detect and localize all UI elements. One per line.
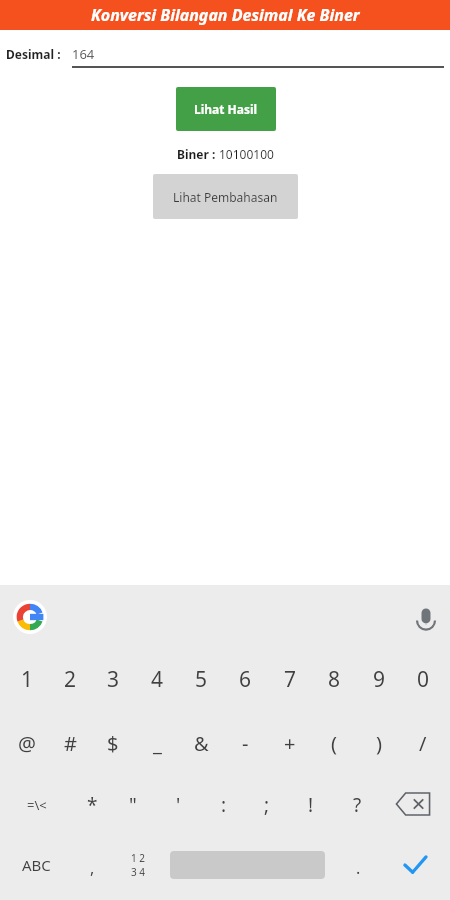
staticText: '	[176, 792, 181, 818]
button[interactable]: *	[70, 776, 114, 834]
button[interactable]: Lihat Hasil	[176, 87, 276, 131]
staticText: *	[87, 792, 98, 818]
button[interactable]: ?	[335, 776, 379, 834]
staticText: 4	[151, 665, 164, 694]
staticText: )	[376, 730, 382, 757]
staticText: Lihat Pembahasan	[173, 189, 278, 205]
staticText: .	[356, 857, 361, 879]
staticText: +	[284, 730, 296, 757]
button[interactable]: 1 2	[116, 841, 160, 889]
button[interactable]: /	[401, 714, 445, 772]
staticText: @	[18, 730, 36, 757]
button[interactable]: =\<	[15, 776, 59, 834]
button[interactable]: (	[312, 714, 356, 772]
staticText: 5	[195, 665, 208, 694]
button[interactable]: 1	[5, 650, 49, 708]
button[interactable]: 7	[268, 650, 312, 708]
button[interactable]: 6	[223, 650, 267, 708]
button[interactable]: ,	[70, 839, 114, 897]
button[interactable]: _	[135, 714, 179, 772]
button[interactable]: Backspace	[390, 778, 436, 830]
button[interactable]: 9	[357, 650, 401, 708]
staticText: 2	[64, 665, 77, 694]
staticText: 0	[417, 665, 430, 694]
staticText: :	[221, 792, 227, 818]
button[interactable]: !	[289, 776, 333, 834]
staticText: 164	[72, 45, 95, 63]
button[interactable]: ABC	[1, 836, 71, 894]
button[interactable]: &	[179, 714, 223, 772]
staticText: Konversi Bilangan Desimal Ke Biner	[91, 4, 360, 26]
button[interactable]: '	[156, 776, 200, 834]
staticText: ,	[90, 857, 95, 879]
button[interactable]: Lihat Pembahasan	[153, 174, 298, 219]
button[interactable]: Google	[13, 600, 47, 634]
button[interactable]: .	[336, 839, 380, 897]
staticText: ?	[353, 792, 362, 818]
staticText: 8	[328, 665, 341, 694]
staticText: ABC	[22, 855, 51, 875]
staticText: &	[194, 730, 209, 757]
staticText: Biner :	[177, 146, 219, 162]
staticText: 7	[284, 665, 297, 694]
staticText: /	[419, 730, 427, 757]
staticText: 1	[21, 665, 34, 694]
staticText: $	[107, 730, 119, 757]
staticText: =\<	[27, 796, 47, 814]
staticText: Desimal :	[6, 46, 61, 62]
button[interactable]: Enter	[392, 841, 438, 889]
button[interactable]: Voice input	[406, 598, 446, 638]
staticText: 10100100	[219, 146, 274, 162]
button[interactable]: -	[223, 714, 267, 772]
staticText: Lihat Hasil	[194, 101, 258, 117]
button[interactable]: 4	[135, 650, 179, 708]
button[interactable]: :	[202, 776, 246, 834]
staticText: 3	[107, 665, 120, 694]
staticText: !	[308, 792, 314, 818]
button[interactable]: 164	[72, 40, 444, 68]
staticText: 1 2	[131, 851, 146, 865]
staticText: 3 4	[131, 865, 146, 879]
staticText: 9	[373, 665, 386, 694]
staticText: ;	[264, 792, 270, 818]
button[interactable]: )	[357, 714, 401, 772]
staticText: "	[129, 792, 137, 818]
staticText: -	[242, 730, 249, 757]
button[interactable]: 2	[48, 650, 92, 708]
button[interactable]: "	[111, 776, 155, 834]
staticText: 6	[239, 665, 252, 694]
button[interactable]: 0	[401, 650, 445, 708]
button[interactable]: +	[268, 714, 312, 772]
button[interactable]: ;	[245, 776, 289, 834]
staticText: (	[331, 730, 337, 757]
button[interactable]: @	[5, 714, 49, 772]
button[interactable]: 5	[179, 650, 223, 708]
button[interactable]: $	[91, 714, 135, 772]
staticText: #	[64, 730, 77, 757]
button[interactable]: 3	[91, 650, 135, 708]
button[interactable]: #	[48, 714, 92, 772]
button[interactable]: 8	[312, 650, 356, 708]
staticText: _	[153, 730, 162, 757]
